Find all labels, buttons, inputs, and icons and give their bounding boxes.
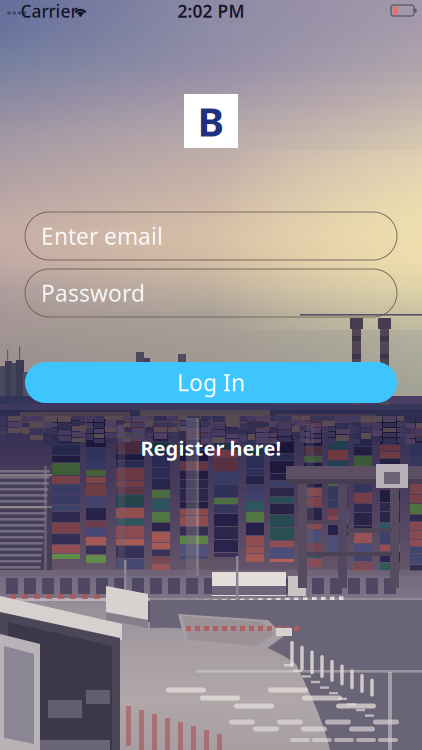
staticText: Password — [41, 278, 145, 308]
staticText: Log In — [177, 367, 245, 397]
button[interactable]: Register here! — [131, 435, 291, 461]
staticText: Enter email — [41, 221, 163, 251]
button[interactable]: Log In — [25, 362, 397, 403]
staticText: B — [197, 94, 224, 147]
staticText: Carrier — [20, 0, 77, 22]
staticText: 2:02 PM — [177, 0, 244, 22]
staticText: Register here! — [140, 435, 281, 461]
